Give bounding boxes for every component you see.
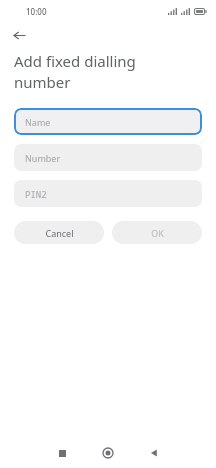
button[interactable]: Home <box>92 438 124 468</box>
button[interactable]: OK <box>112 221 202 244</box>
staticText: Number <box>25 152 61 164</box>
button[interactable]: Cancel <box>14 221 104 244</box>
staticText: Cancel <box>45 227 74 239</box>
button[interactable]: PIN2 <box>14 180 202 207</box>
button[interactable]: Back <box>8 24 30 46</box>
staticText: 10:00 <box>26 6 47 17</box>
staticText: Add fixed dialling number <box>14 51 136 93</box>
staticText: OK <box>151 227 164 239</box>
button[interactable]: Name <box>14 108 202 135</box>
button[interactable]: Number <box>14 144 202 171</box>
button[interactable]: Recents <box>46 438 78 468</box>
button[interactable]: Back <box>138 438 170 468</box>
staticText: PIN2 <box>25 188 47 200</box>
staticText: Name <box>25 116 51 128</box>
